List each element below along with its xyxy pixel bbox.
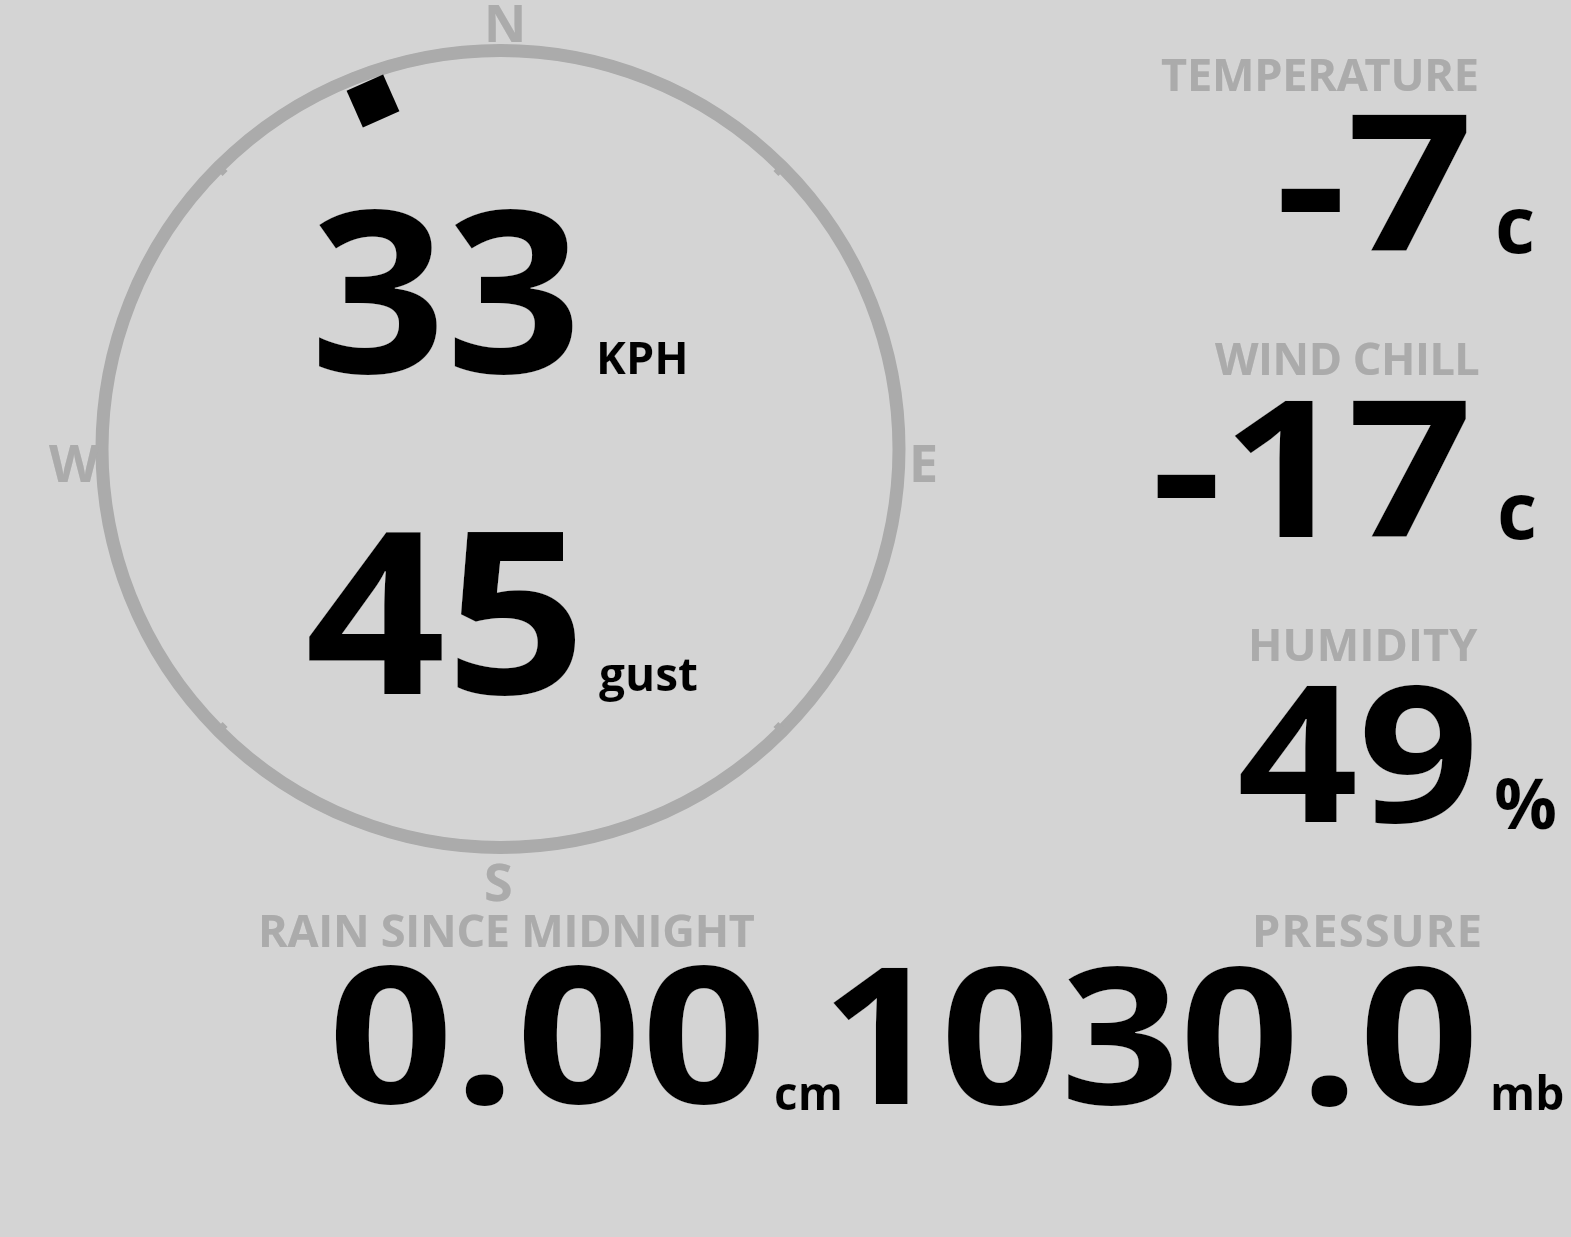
button[interactable]: Wind chill minus 17 degrees Celsius (1140, 325, 1560, 595)
button[interactable]: Wind 33 KPH, gust 45, direction NNW (100, 50, 900, 850)
button[interactable]: Pressure 1030.0 millibars (860, 900, 1560, 1130)
staticText: gust (599, 642, 699, 705)
staticText: KPH (596, 326, 689, 387)
staticText: W (49, 426, 100, 497)
staticText: 45 (305, 452, 587, 760)
staticText: RAIN SINCE MIDNIGHT (258, 899, 755, 960)
staticText: 49 (1237, 619, 1479, 878)
staticText: c (1497, 456, 1538, 562)
staticText: 1030.0 (821, 901, 1479, 1160)
button[interactable]: Humidity 49 percent (1140, 610, 1560, 870)
staticText: mb (1490, 1061, 1565, 1124)
staticText: 33 (310, 131, 583, 439)
staticText: cm (774, 1061, 843, 1124)
staticText: -7 (1275, 48, 1474, 307)
staticText: 0.00 (328, 900, 767, 1159)
button[interactable]: Temperature minus 7 degrees Celsius (1140, 40, 1560, 310)
staticText: PRESSURE (1252, 899, 1484, 960)
button[interactable]: Rain since midnight 0.00 cm (250, 900, 850, 1130)
staticText: -17 (1151, 334, 1474, 593)
other: Wind direction NNW (347, 75, 399, 127)
staticText: WIND CHILL (1215, 327, 1480, 388)
staticText: E (909, 426, 939, 497)
staticText: c (1495, 170, 1536, 276)
staticText: TEMPERATURE (1161, 43, 1479, 104)
staticText: HUMIDITY (1248, 613, 1478, 674)
staticText: N (484, 0, 527, 57)
staticText: % (1494, 754, 1558, 849)
staticText: S (484, 845, 513, 916)
